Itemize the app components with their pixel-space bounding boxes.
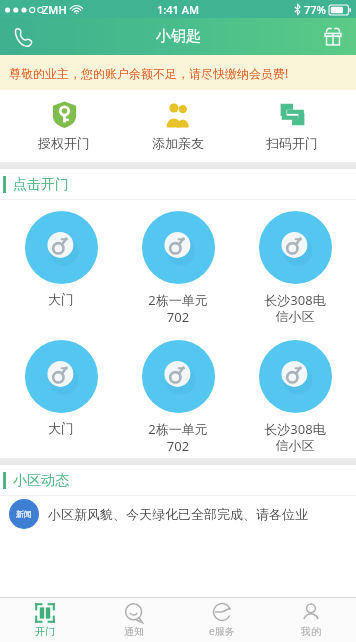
button[interactable]: 新闻 <box>0 496 356 532</box>
staticText: 大门 <box>48 291 74 307</box>
staticText: 授权开门 <box>38 135 90 151</box>
button[interactable]: 尊敬的业主，您的账户余额不足，请尽快缴纳会员费! <box>0 55 356 90</box>
staticText: ZMH <box>42 2 67 17</box>
staticText: 2栋一单元 702 <box>148 291 208 325</box>
button[interactable]: 通知 <box>90 598 178 642</box>
button[interactable]: 2栋一单元 702 <box>122 200 234 329</box>
button[interactable]: 2栋一单元 702 <box>122 329 234 458</box>
staticText: 新闻 <box>16 509 32 519</box>
button[interactable]: 我的 <box>267 598 355 642</box>
staticText: 77% <box>304 2 326 17</box>
staticText: 小区动态 <box>13 472 69 490</box>
staticText: 长沙308电 信小区 <box>264 291 326 325</box>
staticText: 点击开门 <box>13 176 69 194</box>
staticText: e服务 <box>209 624 235 638</box>
button[interactable]: 大门 <box>5 200 117 329</box>
staticText: 添加亲友 <box>152 135 204 151</box>
staticText: 通知 <box>124 625 144 638</box>
button[interactable]: e服务 <box>178 598 266 642</box>
button[interactable]: 添加亲友 <box>128 90 228 162</box>
staticText: 长沙308电 信小区 <box>264 420 326 454</box>
staticText: 我的 <box>301 625 321 638</box>
staticText: 2栋一单元 702 <box>148 420 208 454</box>
button[interactable]: 开门 <box>1 598 89 642</box>
button[interactable]: 授权开门 <box>14 90 114 162</box>
staticText: 尊敬的业主，您的账户余额不足，请尽快缴纳会员费! <box>9 65 289 81</box>
button[interactable]: 扫码开门 <box>242 90 342 162</box>
button[interactable]: Call <box>8 22 38 52</box>
staticText: 小区新风貌、今天绿化已全部完成、请各位业 <box>48 506 308 522</box>
button[interactable]: 长沙308电 信小区 <box>239 329 351 458</box>
staticText: 大门 <box>48 420 74 436</box>
staticText: 1:41 AM <box>157 2 200 17</box>
button[interactable]: 长沙308电 信小区 <box>239 200 351 329</box>
button[interactable]: Gifts <box>318 22 348 52</box>
staticText: 开门 <box>35 625 55 638</box>
staticText: 小钥匙 <box>156 27 201 46</box>
staticText: 扫码开门 <box>266 135 318 151</box>
button[interactable]: 大门 <box>5 329 117 458</box>
